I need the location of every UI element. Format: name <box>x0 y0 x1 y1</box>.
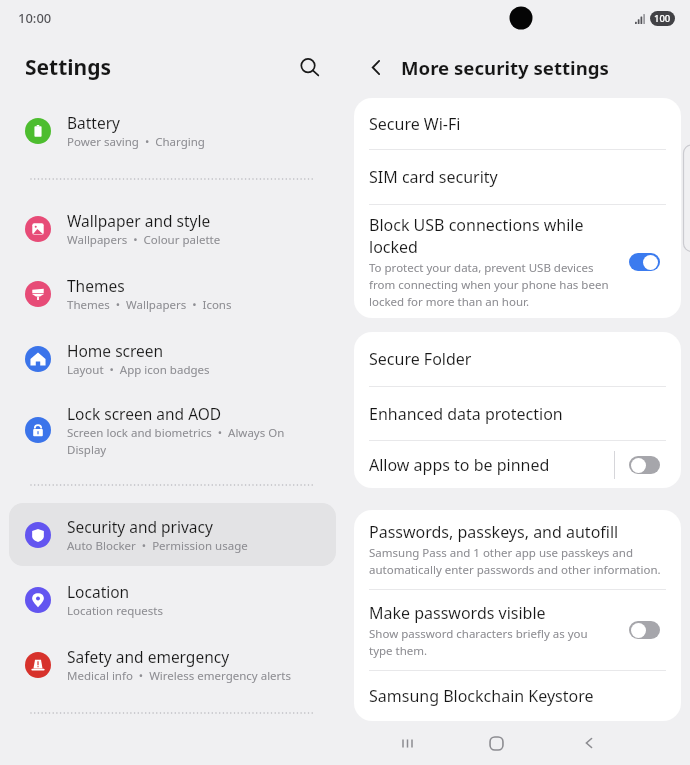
staticText: Settings <box>25 53 112 82</box>
button[interactable]: Home screen <box>9 327 336 390</box>
staticText: Auto Blocker • Permission usage <box>67 538 248 554</box>
staticText: More security settings <box>401 55 609 80</box>
staticText: Battery <box>67 112 121 133</box>
staticText: Medical info • Wireless emergency alerts <box>67 668 291 684</box>
button[interactable]: Home <box>474 721 518 765</box>
button[interactable]: Make passwords visible <box>354 590 681 670</box>
button[interactable]: Search <box>291 49 327 85</box>
staticText: Screen lock and biometrics • Always On D… <box>67 425 322 457</box>
button[interactable]: Toggle off <box>629 621 660 639</box>
staticText: Power saving • Charging <box>67 134 205 150</box>
staticText: Secure Wi-Fi <box>369 113 461 135</box>
staticText: Wallpaper and style <box>67 210 211 231</box>
button[interactable]: Back <box>567 721 611 765</box>
staticText: Security and privacy <box>67 516 213 537</box>
staticText: Lock screen and AOD <box>67 403 222 424</box>
button[interactable]: Toggle off <box>629 456 660 474</box>
staticText: Home screen <box>67 340 164 361</box>
button[interactable]: Recents <box>385 721 429 765</box>
staticText: Safety and emergency <box>67 646 230 667</box>
staticText: Layout • App icon badges <box>67 362 210 378</box>
button[interactable]: Battery <box>9 99 336 162</box>
button[interactable]: Safety and emergency <box>9 633 336 696</box>
staticText: Allow apps to be pinned <box>369 454 550 476</box>
staticText: Show password characters briefly as you … <box>369 626 613 659</box>
staticText: Location requests <box>67 603 163 619</box>
button[interactable]: Themes <box>9 262 336 325</box>
staticText: Themes • Wallpapers • Icons <box>67 297 232 313</box>
button[interactable]: Secure Wi-Fi <box>354 98 681 149</box>
button[interactable]: Enhanced data protection <box>354 387 681 440</box>
staticText: To protect your data, prevent USB device… <box>369 260 613 310</box>
staticText: Location <box>67 581 130 602</box>
button[interactable]: Samsung Blockchain Keystore <box>354 671 681 721</box>
staticText: SIM card security <box>369 166 498 188</box>
button[interactable]: Lock screen and AOD <box>9 392 336 468</box>
staticText: Themes <box>67 275 125 296</box>
staticText: Passwords, passkeys, and autofill <box>369 521 619 543</box>
button[interactable]: Toggle on <box>629 253 660 271</box>
staticText: Enhanced data protection <box>369 403 563 425</box>
staticText: Secure Folder <box>369 348 472 370</box>
staticText: Make passwords visible <box>369 602 546 624</box>
staticText: Block USB connections while locked <box>369 214 613 258</box>
button[interactable]: Allow apps to be pinned <box>354 441 681 488</box>
staticText: Samsung Blockchain Keystore <box>369 685 594 707</box>
button[interactable]: Security and privacy <box>9 503 336 566</box>
button[interactable]: Wallpaper and style <box>9 197 336 260</box>
button[interactable]: Location <box>9 568 336 631</box>
staticText: 10:00 <box>18 9 52 27</box>
staticText: 100 <box>654 12 671 25</box>
button[interactable]: Secure Folder <box>354 332 681 386</box>
button[interactable]: Block USB connections while locked <box>354 205 681 318</box>
button[interactable]: Back <box>361 52 391 82</box>
button[interactable]: SIM card security <box>354 150 681 204</box>
staticText: Wallpapers • Colour palette <box>67 232 221 248</box>
staticText: Samsung Pass and 1 other app use passkey… <box>369 545 666 578</box>
button[interactable]: Passwords, passkeys, and autofill <box>354 510 681 589</box>
